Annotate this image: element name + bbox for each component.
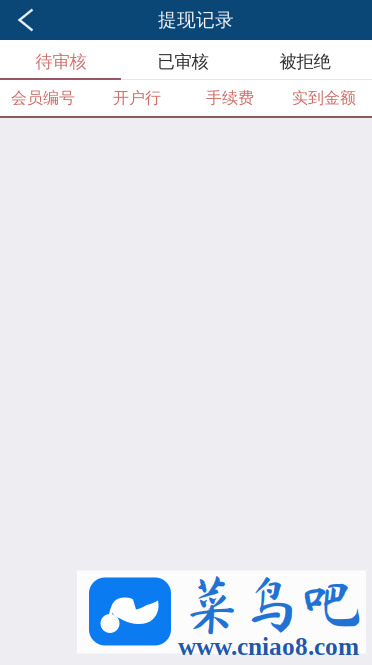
button[interactable]: 待审核 xyxy=(0,40,122,78)
staticText: 手续费 xyxy=(206,88,254,108)
staticText: 提现记录 xyxy=(158,8,234,31)
staticText: 实到金额 xyxy=(292,88,356,108)
staticText: 菜鸟吧 xyxy=(182,573,362,633)
staticText: 待审核 xyxy=(35,51,86,72)
button[interactable]: Back xyxy=(0,0,50,40)
staticText: www.cniao8.com xyxy=(178,632,359,661)
staticText: 已审核 xyxy=(157,51,208,72)
button[interactable]: 已审核 xyxy=(122,40,244,78)
staticText: 被拒绝 xyxy=(279,51,330,72)
button[interactable]: 被拒绝 xyxy=(244,40,366,78)
staticText: 会员编号 xyxy=(11,88,75,108)
staticText: 开户行 xyxy=(113,88,161,108)
